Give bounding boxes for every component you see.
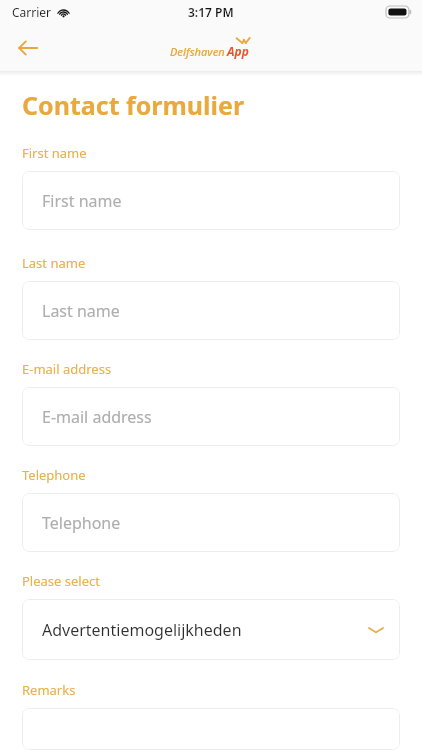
staticText: First name [42,190,122,212]
staticText: E-mail address [42,406,152,428]
staticText: Last name [22,254,86,272]
button[interactable]: Telephone [22,493,400,552]
button[interactable]: Delfshaven App logo [170,37,252,59]
button[interactable]: First name [22,171,400,230]
staticText: 3:17 PM [188,4,234,20]
staticText: App [227,43,249,59]
staticText: Advertentiemogelijkheden [42,619,242,641]
staticText: Last name [42,300,120,322]
staticText: Telephone [22,466,86,484]
staticText: Remarks [22,681,76,699]
staticText: Contact formulier [22,88,245,122]
button[interactable]: E-mail address [22,387,400,446]
button[interactable]: Back [8,28,48,68]
staticText: E-mail address [22,360,112,378]
staticText: Please select [22,572,100,590]
button[interactable]: Advertentiemogelijkheden [22,599,400,660]
staticText: Delfshaven [170,44,225,59]
button[interactable] [22,708,400,750]
staticText: First name [22,144,87,162]
staticText: Carrier [12,4,52,20]
button[interactable]: Last name [22,281,400,340]
staticText: Telephone [42,512,121,534]
